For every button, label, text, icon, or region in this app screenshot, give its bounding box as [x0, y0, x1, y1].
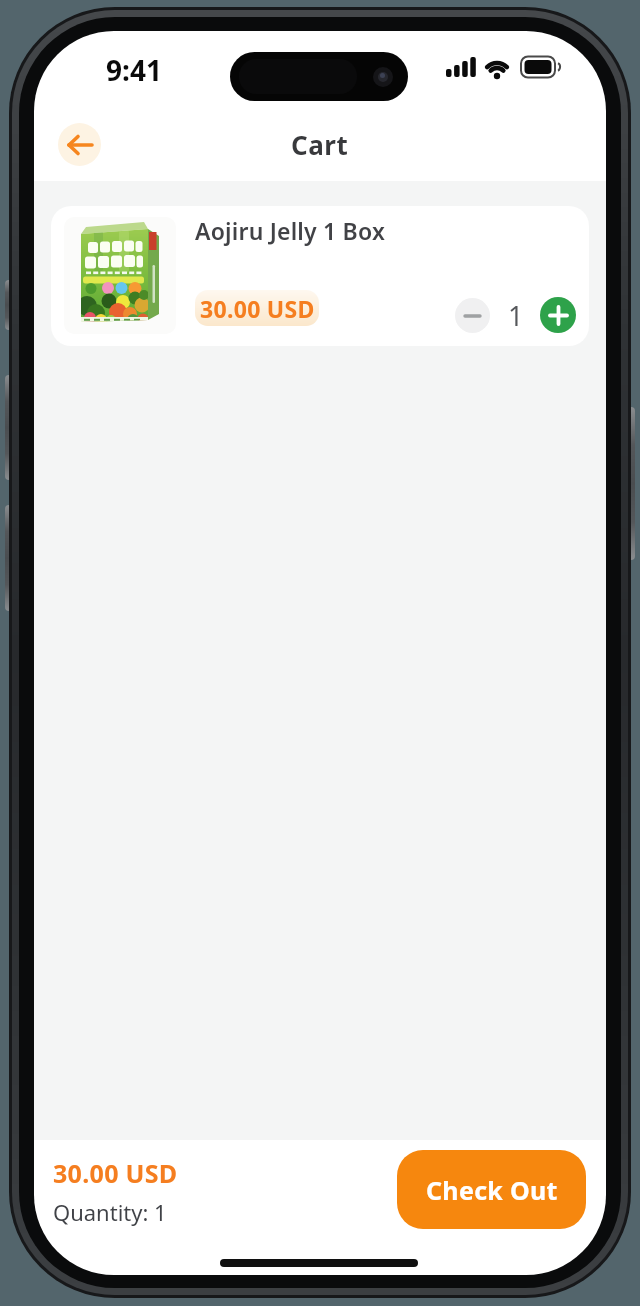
button[interactable] [58, 123, 101, 166]
staticText: Aojiru Jelly 1 Box [195, 215, 385, 246]
staticText: 9:41 [106, 51, 162, 85]
staticText: 1 [508, 297, 524, 334]
button[interactable] [455, 298, 490, 333]
button[interactable]: Aojiru Jelly 1 Box [51, 206, 589, 346]
button[interactable] [540, 297, 576, 333]
staticText: 30.00 USD [200, 293, 315, 324]
staticText: Quantity: 1 [53, 1197, 167, 1227]
staticText: 30.00 USD [53, 1156, 178, 1190]
button[interactable]: Check Out [397, 1150, 586, 1229]
staticText: Check Out [426, 1173, 558, 1207]
staticText: Cart [291, 127, 349, 162]
